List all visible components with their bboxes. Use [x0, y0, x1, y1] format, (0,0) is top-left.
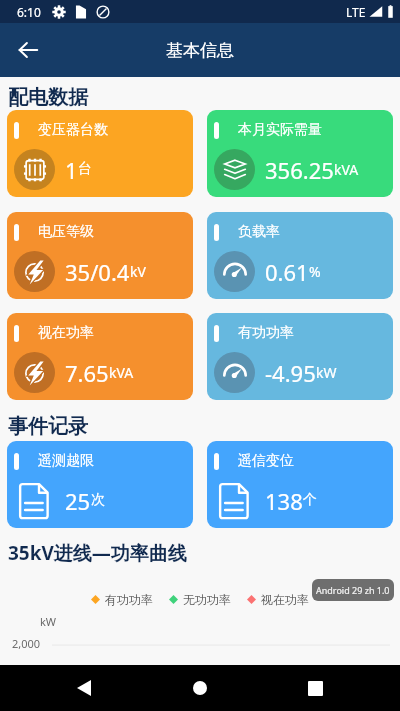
staticText: 变压器台数	[38, 121, 108, 139]
staticText: 无功功率	[183, 592, 231, 607]
button[interactable]: 视在功率	[7, 313, 193, 400]
button[interactable]: Back	[10, 32, 46, 68]
staticText: 事件记录	[8, 414, 88, 439]
staticText: 个	[303, 491, 317, 509]
staticText: 负载率	[238, 223, 280, 241]
button[interactable]: Recents	[295, 668, 335, 708]
button[interactable]: 遥信变位	[207, 441, 393, 528]
staticText: 次	[91, 491, 105, 509]
staticText: kVA	[334, 160, 359, 179]
button[interactable]: Back	[64, 668, 104, 708]
staticText: 1	[65, 155, 78, 185]
staticText: 视在功率	[38, 324, 94, 342]
staticText: 配电数据	[8, 85, 88, 110]
button[interactable]: 遥测越限	[7, 441, 193, 528]
staticText: 台	[78, 160, 92, 178]
staticText: kW	[40, 614, 57, 629]
button[interactable]: 电压等级	[7, 212, 193, 299]
staticText: kW	[316, 363, 337, 382]
staticText: 有功功率	[238, 324, 294, 342]
button[interactable]: 变压器台数	[7, 110, 193, 197]
button[interactable]: Home	[180, 668, 220, 708]
staticText: kV	[130, 262, 146, 281]
staticText: %	[309, 262, 321, 281]
staticText: 遥测越限	[38, 452, 94, 470]
staticText: 基本信息	[166, 40, 234, 61]
staticText: 7.65	[65, 358, 109, 388]
staticText: 138	[265, 486, 303, 516]
staticText: 电压等级	[38, 223, 94, 241]
button[interactable]: 负载率	[207, 212, 393, 299]
staticText: 25	[65, 486, 91, 516]
staticText: kVA	[109, 363, 134, 382]
staticText: -4.95	[265, 358, 316, 388]
staticText: LTE	[346, 4, 366, 20]
staticText: 本月实际需量	[238, 121, 322, 139]
button[interactable]: 有功功率	[207, 313, 393, 400]
staticText: 2,000	[12, 636, 41, 651]
button[interactable]: 本月实际需量	[207, 110, 393, 197]
staticText: Android 29 zh 1.0	[316, 584, 390, 596]
staticText: 有功功率	[105, 592, 153, 607]
staticText: 0.61	[265, 257, 309, 287]
staticText: 遥信变位	[238, 452, 294, 470]
staticText: 视在功率	[261, 592, 309, 607]
staticText: 35kV进线—功率曲线	[8, 540, 187, 566]
staticText: 35/0.4	[65, 257, 130, 287]
staticText: 6:10	[17, 4, 41, 20]
staticText: 356.25	[265, 155, 334, 185]
